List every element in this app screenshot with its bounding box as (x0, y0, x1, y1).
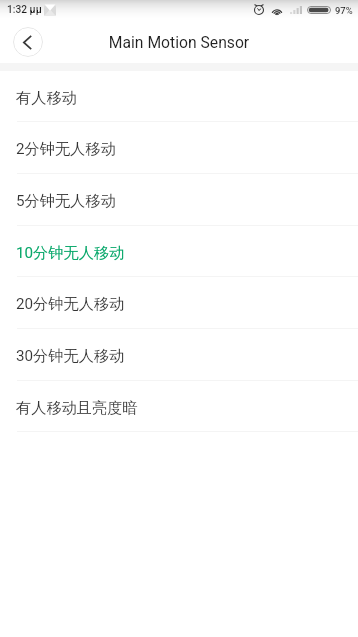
staticText: 97% (335, 5, 353, 16)
button[interactable]: 5分钟无人移动 (0, 174, 358, 226)
button[interactable]: 有人移动且亮度暗 (0, 381, 358, 433)
staticText: Main Motion Sensor (0, 33, 358, 51)
staticText: 1:32 μμ (7, 4, 42, 16)
button[interactable]: Back (13, 27, 43, 57)
staticText: 有人移动 (16, 88, 77, 107)
staticText: 2分钟无人移动 (16, 139, 116, 158)
staticText: 20分钟无人移动 (16, 294, 125, 313)
staticText: 5分钟无人移动 (16, 191, 116, 210)
button[interactable]: 有人移动 (0, 71, 358, 123)
staticText: 10分钟无人移动 (16, 243, 125, 262)
button[interactable]: 10分钟无人移动 (0, 226, 358, 278)
button[interactable]: 30分钟无人移动 (0, 329, 358, 381)
staticText: 30分钟无人移动 (16, 346, 125, 365)
button[interactable]: 20分钟无人移动 (0, 277, 358, 329)
staticText: 有人移动且亮度暗 (16, 398, 138, 417)
button[interactable]: 2分钟无人移动 (0, 122, 358, 174)
